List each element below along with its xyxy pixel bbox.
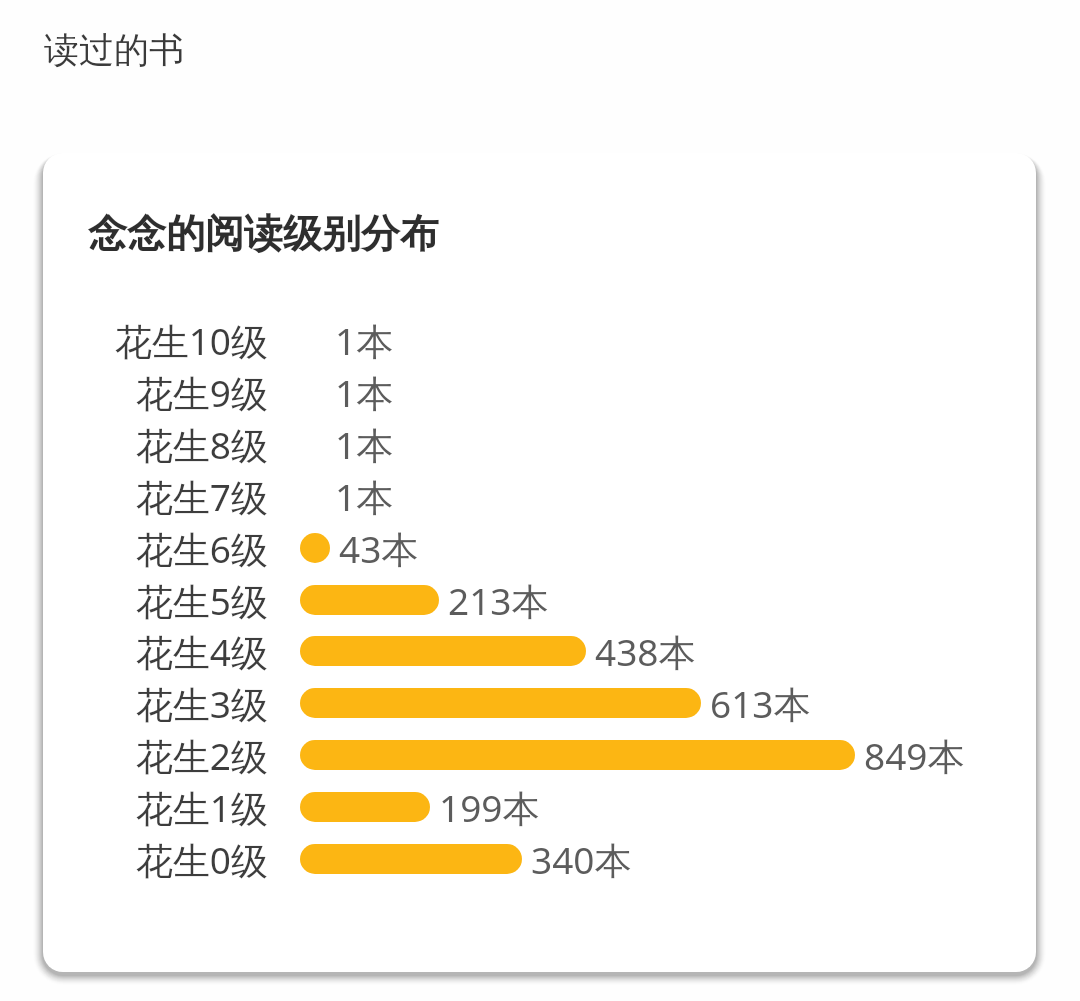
staticText: 花生5级 bbox=[135, 575, 268, 625]
staticText: 花生2级 bbox=[135, 730, 268, 780]
staticText: 1本 bbox=[335, 315, 394, 365]
button[interactable]: 花生1级 bbox=[43, 782, 268, 832]
button[interactable]: 花生4级 bbox=[43, 626, 268, 676]
other: 花生2级: 849本 bbox=[300, 740, 855, 770]
staticText: 花生8级 bbox=[135, 419, 268, 469]
staticText: 花生4级 bbox=[135, 626, 268, 676]
staticText: 花生9级 bbox=[135, 367, 268, 417]
button[interactable]: 花生7级 bbox=[43, 471, 268, 521]
other: 花生0级: 340本 bbox=[300, 844, 522, 874]
staticText: 1本 bbox=[335, 367, 394, 417]
staticText: 340本 bbox=[531, 834, 632, 884]
other: 花生3级: 613本 bbox=[300, 688, 701, 718]
button[interactable]: 花生10级 bbox=[43, 315, 268, 365]
button[interactable]: 花生8级 bbox=[43, 419, 268, 469]
button[interactable]: 花生2级 bbox=[43, 730, 268, 780]
staticText: 花生7级 bbox=[135, 471, 268, 521]
staticText: 613本 bbox=[710, 678, 811, 728]
other: 花生5级: 213本 bbox=[300, 585, 439, 615]
staticText: 念念的阅读级别分布 bbox=[88, 209, 439, 258]
staticText: 438本 bbox=[595, 626, 696, 676]
staticText: 849本 bbox=[864, 730, 965, 780]
button[interactable]: 花生3级 bbox=[43, 678, 268, 728]
button[interactable]: 花生6级 bbox=[43, 523, 268, 573]
other: 花生4级: 438本 bbox=[300, 636, 586, 666]
staticText: 花生0级 bbox=[135, 834, 268, 884]
button[interactable]: 念念的阅读级别分布 bbox=[43, 153, 1036, 972]
other: 花生1级: 199本 bbox=[300, 792, 430, 822]
staticText: 213本 bbox=[448, 575, 549, 625]
staticText: 花生6级 bbox=[135, 523, 268, 573]
staticText: 花生1级 bbox=[135, 782, 268, 832]
staticText: 花生10级 bbox=[114, 315, 268, 365]
other: 花生6级: 43本 bbox=[300, 533, 330, 563]
button[interactable]: 花生0级 bbox=[43, 834, 268, 884]
staticText: 花生3级 bbox=[135, 678, 268, 728]
staticText: 1本 bbox=[335, 419, 394, 469]
button[interactable]: 花生9级 bbox=[43, 367, 268, 417]
staticText: 43本 bbox=[339, 523, 419, 573]
staticText: 199本 bbox=[439, 782, 540, 832]
staticText: 1本 bbox=[335, 471, 394, 521]
staticText: 读过的书 bbox=[44, 28, 184, 72]
button[interactable]: 花生5级 bbox=[43, 575, 268, 625]
